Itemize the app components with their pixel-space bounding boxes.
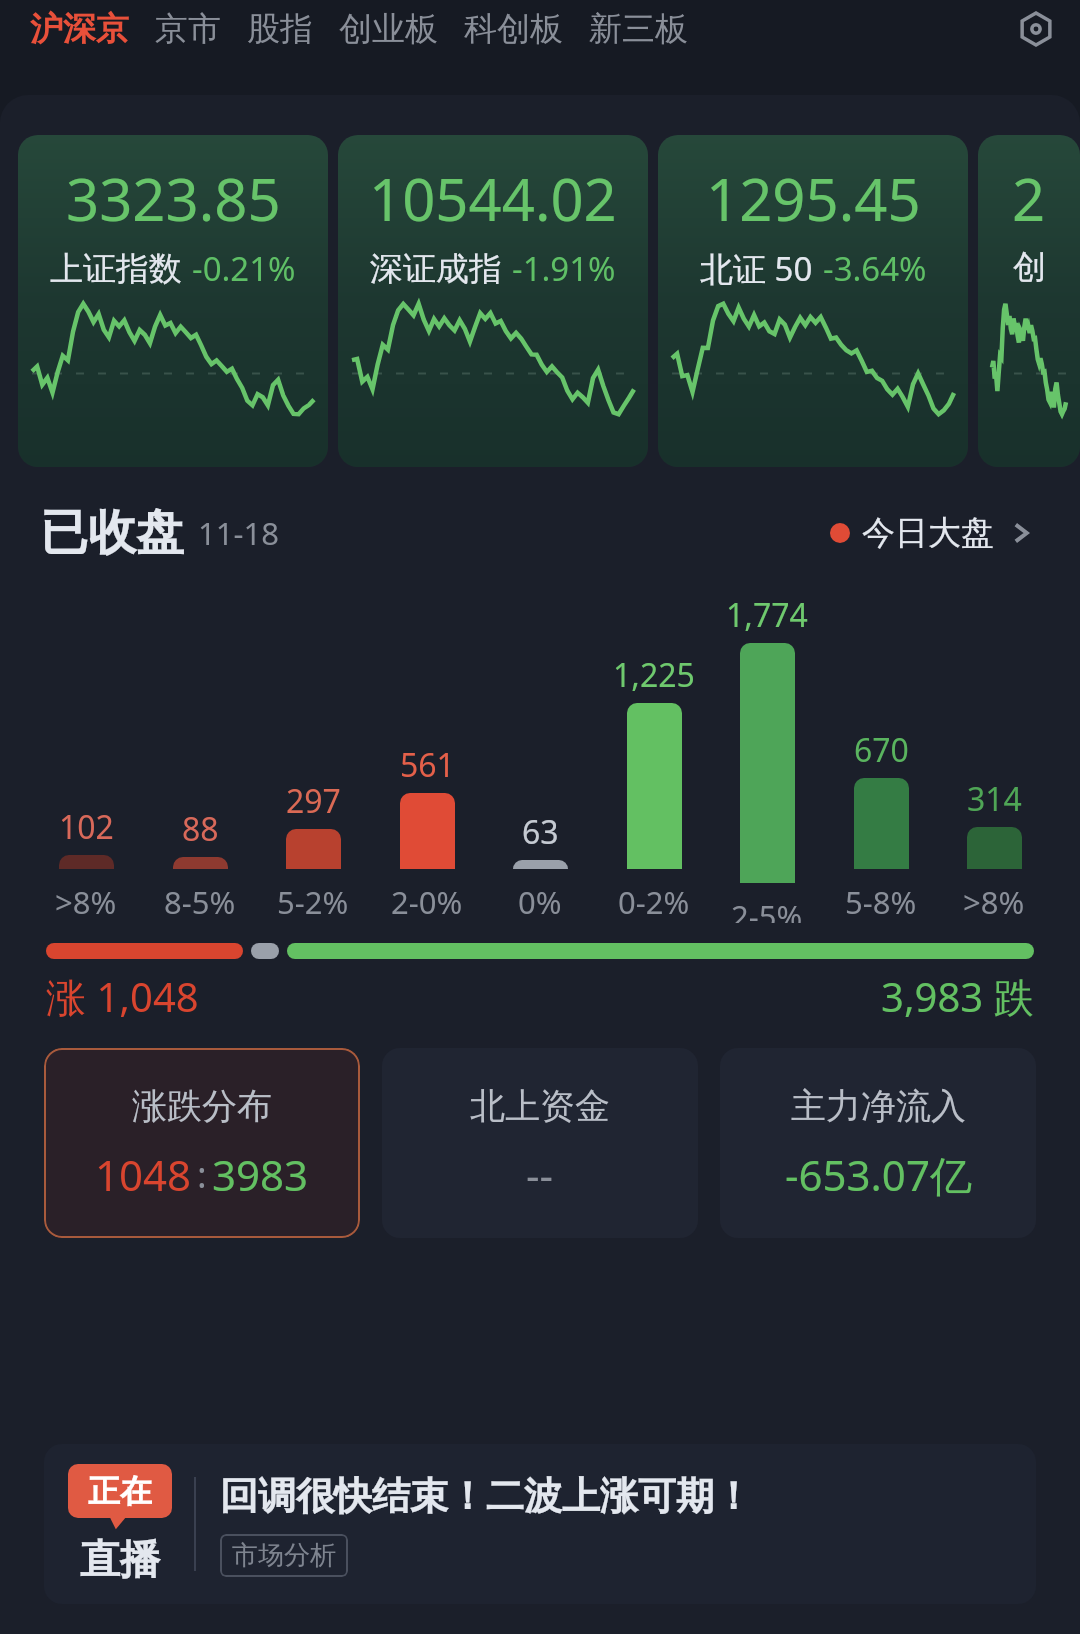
staticText: 正在 xyxy=(88,1471,152,1511)
staticText: 314 xyxy=(967,777,1022,821)
staticText: 涨跌分布 xyxy=(132,1084,272,1128)
staticText: 1048 xyxy=(95,1146,192,1203)
staticText: -1.91% xyxy=(512,246,616,291)
staticText: 沪深京 xyxy=(30,8,129,50)
button[interactable]: 1,225 xyxy=(602,653,706,923)
staticText: 创业板 xyxy=(339,8,438,50)
staticText: 上证指数 xyxy=(50,248,182,290)
staticText: 3,983 跌 xyxy=(881,969,1034,1024)
staticText: -- xyxy=(526,1146,554,1203)
staticText: 5-2% xyxy=(277,881,349,923)
staticText: 670 xyxy=(854,728,909,772)
staticText: 3983 xyxy=(212,1146,309,1203)
staticText: 深证成指 xyxy=(370,248,502,290)
staticText: 今日大盘 xyxy=(862,512,994,554)
button[interactable]: 创业板 xyxy=(339,0,438,58)
button[interactable]: 新三板 xyxy=(589,0,688,58)
button[interactable]: 沪深京 xyxy=(30,0,129,58)
staticText: -0.21% xyxy=(192,246,296,291)
staticText: 北上资金 xyxy=(470,1084,610,1128)
button[interactable]: Settings xyxy=(1010,3,1062,55)
button[interactable]: 正在 xyxy=(44,1444,1036,1604)
button[interactable]: 10544.02 xyxy=(338,135,648,467)
staticText: 市场分析 xyxy=(232,1539,336,1572)
button[interactable]: 2 xyxy=(978,135,1080,467)
staticText: 创 xyxy=(1013,246,1046,288)
staticText: 涨 1,048 xyxy=(46,969,199,1024)
button[interactable]: 京市 xyxy=(155,0,221,58)
staticText: 0% xyxy=(518,881,562,923)
staticText: 回调很快结束！二波上涨可期！ xyxy=(220,1472,752,1520)
button[interactable]: 北上资金 xyxy=(382,1048,698,1238)
staticText: : xyxy=(197,1150,207,1199)
staticText: 科创板 xyxy=(464,8,563,50)
staticText: 主力净流入 xyxy=(791,1084,966,1128)
button[interactable]: 股指 xyxy=(247,0,313,58)
staticText: >8% xyxy=(963,881,1025,923)
staticText: 297 xyxy=(286,779,341,823)
staticText: 京市 xyxy=(155,8,221,50)
staticText: 10544.02 xyxy=(369,159,617,238)
staticText: 88 xyxy=(182,807,219,851)
button[interactable]: 科创板 xyxy=(464,0,563,58)
button[interactable]: 561 xyxy=(375,743,479,923)
staticText: 11-18 xyxy=(198,512,279,554)
button[interactable]: 今日大盘 xyxy=(824,506,1040,560)
staticText: -653.07亿 xyxy=(785,1146,972,1203)
staticText: 2 xyxy=(1012,159,1046,238)
button[interactable]: 88 xyxy=(148,807,252,923)
button[interactable]: 63 xyxy=(488,810,592,923)
button[interactable]: 314 xyxy=(942,777,1046,923)
staticText: 股指 xyxy=(247,8,313,50)
button[interactable]: 涨跌分布 xyxy=(44,1048,360,1238)
staticText: 3323.85 xyxy=(66,159,281,238)
staticText: 0-2% xyxy=(618,881,690,923)
staticText: 63 xyxy=(522,810,559,854)
staticText: 102 xyxy=(59,805,114,849)
staticText: 新三板 xyxy=(589,8,688,50)
button[interactable]: 670 xyxy=(829,728,933,923)
staticText: 8-5% xyxy=(164,881,236,923)
staticText: 北证 50 xyxy=(700,246,813,291)
button[interactable]: 297 xyxy=(261,779,365,923)
button[interactable]: 102 xyxy=(34,805,138,923)
staticText: >8% xyxy=(55,881,117,923)
staticText: 561 xyxy=(400,743,455,787)
staticText: 1,225 xyxy=(613,653,695,697)
staticText: 1,774 xyxy=(726,593,808,637)
staticText: 直播 xyxy=(80,1534,160,1584)
staticText: 2-0% xyxy=(391,881,463,923)
staticText: -3.64% xyxy=(823,246,927,291)
staticText: 5-8% xyxy=(845,881,917,923)
button[interactable]: 1,774 xyxy=(715,593,819,923)
button[interactable]: 1295.45 xyxy=(658,135,968,467)
staticText: 1295.45 xyxy=(706,159,921,238)
staticText: 2-5% xyxy=(731,895,803,923)
button[interactable]: 3323.85 xyxy=(18,135,328,467)
staticText: 已收盘 xyxy=(40,503,184,563)
button[interactable]: 主力净流入 xyxy=(720,1048,1036,1238)
